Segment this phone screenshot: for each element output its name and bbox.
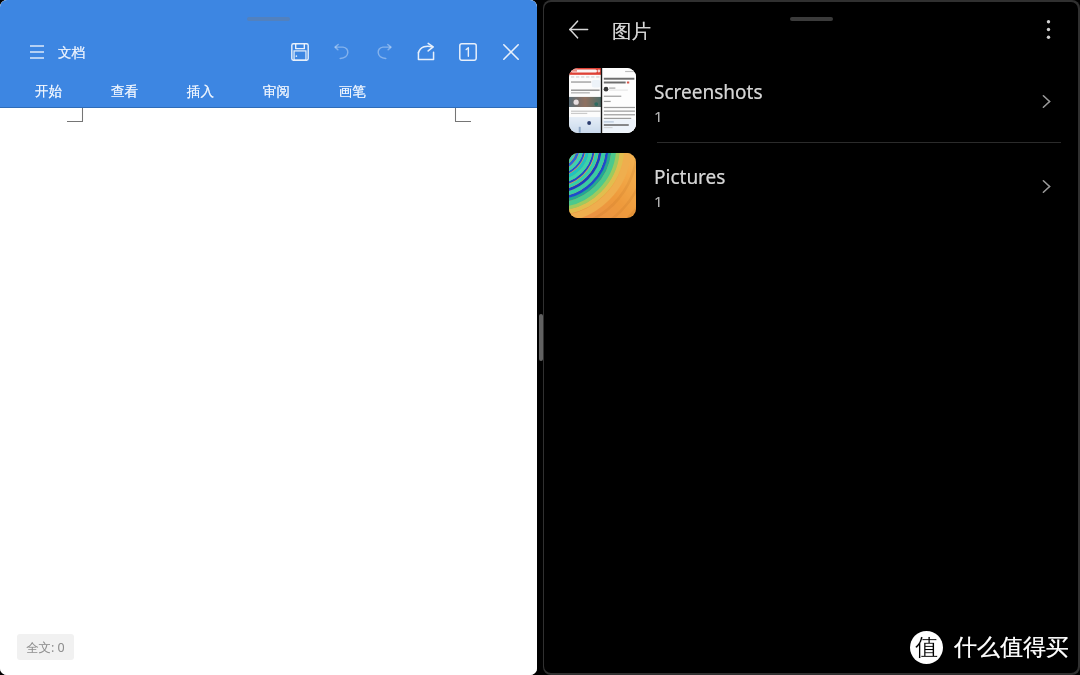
button[interactable]: 开始: [21, 79, 75, 103]
staticText: 全文: 0: [26, 639, 65, 656]
staticText: 插入: [187, 83, 214, 100]
staticText: 1: [654, 191, 663, 211]
button[interactable]: More options: [1031, 12, 1065, 46]
button[interactable]: Share: [410, 36, 442, 68]
staticText: 审阅: [263, 83, 290, 100]
staticText: 值: [915, 633, 938, 662]
staticText: 文档: [58, 44, 85, 61]
button[interactable]: Screenshots: [544, 58, 1078, 143]
staticText: 1: [654, 106, 663, 126]
button[interactable]: Save: [284, 36, 316, 68]
staticText: Pictures: [654, 164, 726, 190]
staticText: 图片: [612, 19, 651, 44]
button[interactable]: Redo: [368, 36, 400, 68]
button[interactable]: Back: [562, 13, 594, 45]
button[interactable]: 查看: [97, 79, 151, 103]
button[interactable]: Pages: [452, 36, 484, 68]
button[interactable]: Undo: [326, 36, 358, 68]
button[interactable]: Resize split: [537, 2, 544, 673]
button[interactable]: 审阅: [249, 79, 303, 103]
button[interactable]: Close: [495, 36, 527, 68]
button[interactable]: Pictures: [544, 143, 1078, 228]
staticText: 什么值得买: [954, 633, 1069, 662]
staticText: 查看: [111, 83, 138, 100]
button[interactable]: 全文: 0: [17, 634, 74, 660]
button[interactable]: 插入: [173, 79, 227, 103]
staticText: 开始: [35, 83, 62, 100]
button[interactable]: Menu: [24, 39, 50, 65]
staticText: 画笔: [339, 83, 366, 100]
button[interactable]: 画笔: [325, 79, 379, 103]
staticText: Screenshots: [654, 79, 763, 105]
